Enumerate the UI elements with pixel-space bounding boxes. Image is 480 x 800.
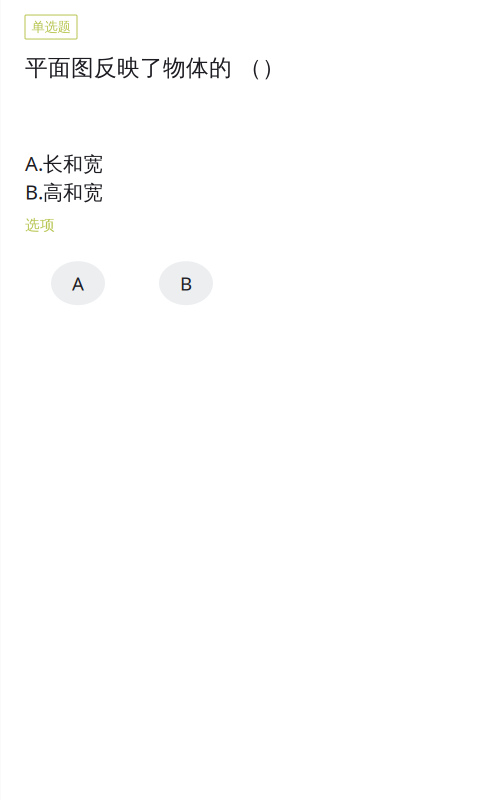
staticText: 单选题 — [31, 19, 70, 35]
staticText: 平面图反映了物体的 （） — [25, 54, 285, 82]
button[interactable]: 选项 B — [159, 261, 213, 305]
staticText: 选项 — [25, 216, 55, 234]
staticText: A.长和宽 — [25, 150, 103, 176]
staticText: B — [180, 271, 192, 296]
staticText: A — [72, 271, 84, 296]
staticText: B.高和宽 — [25, 178, 103, 205]
button[interactable]: 选项 A — [51, 261, 105, 305]
